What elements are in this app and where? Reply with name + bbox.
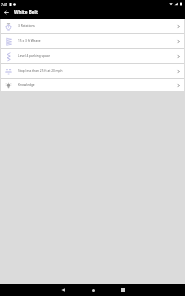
button[interactable]: Recent apps (108, 284, 138, 296)
button[interactable]: Level 4 parking space (1, 49, 184, 63)
button[interactable]: Knowledge (1, 79, 184, 91)
button[interactable]: Back (0, 8, 12, 16)
button[interactable]: 3 Rotations (1, 19, 184, 33)
button[interactable]: 15 x 3 ft Weave (1, 34, 184, 48)
staticText: Level 4 parking space (18, 54, 172, 58)
button[interactable]: Stop less than 25 ft at 20 mph (1, 64, 184, 78)
button[interactable]: Home (78, 284, 108, 296)
staticText: White Belt (14, 9, 38, 15)
staticText: 7:41 (1, 2, 8, 7)
staticText: Knowledge (18, 83, 172, 87)
staticText: 3 Rotations (18, 24, 172, 28)
button[interactable]: Back (48, 284, 78, 296)
staticText: Stop less than 25 ft at 20 mph (18, 69, 172, 73)
staticText: 15 x 3 ft Weave (18, 39, 172, 43)
